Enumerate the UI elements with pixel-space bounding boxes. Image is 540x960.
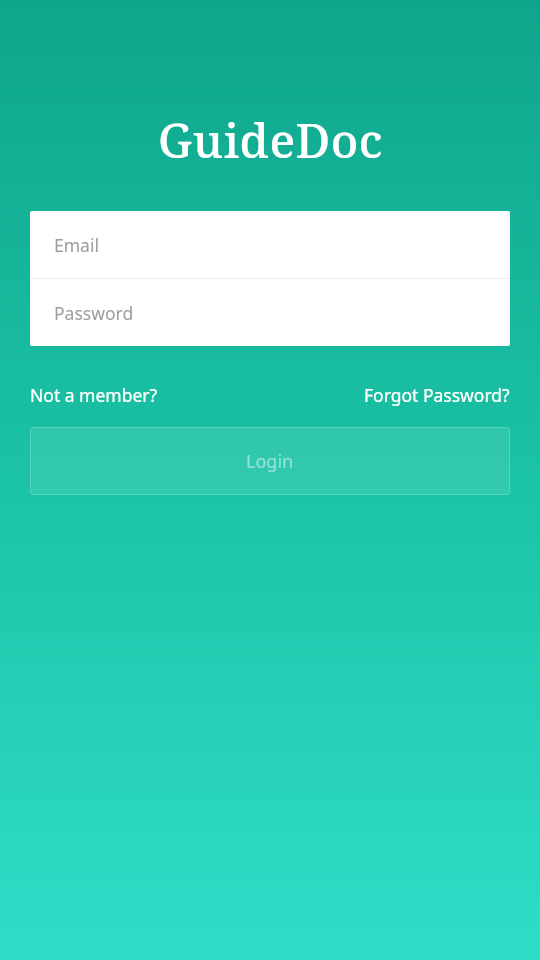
staticText: Email (54, 233, 99, 257)
staticText: Password (54, 301, 134, 325)
button[interactable]: Login (30, 427, 510, 495)
staticText: GuideDoc (158, 108, 383, 172)
button[interactable]: Not a member? (30, 379, 158, 411)
button[interactable]: Email (30, 211, 510, 278)
staticText: Not a member? (30, 383, 158, 407)
staticText: Login (246, 449, 294, 474)
button[interactable]: Password (30, 279, 510, 346)
staticText: Forgot Password? (364, 383, 510, 407)
button[interactable]: Forgot Password? (364, 379, 510, 411)
